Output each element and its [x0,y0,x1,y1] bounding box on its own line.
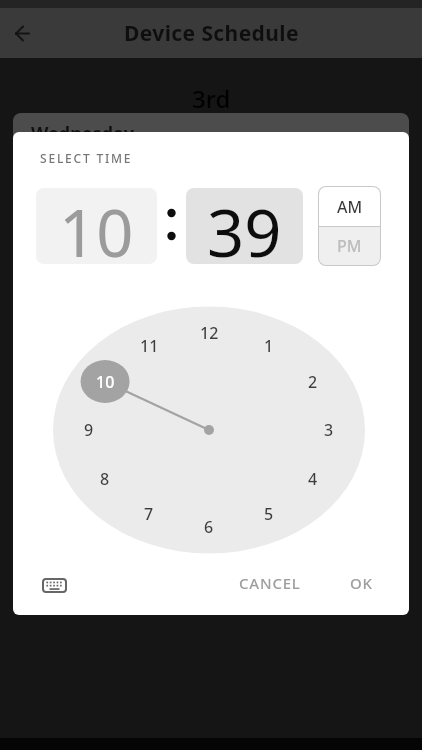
staticText: 8 [100,468,110,490]
staticText: 4 [308,468,318,490]
button[interactable]: 39 [186,188,303,264]
button[interactable]: 10 [85,371,125,393]
staticText: 11 [140,335,159,357]
button[interactable]: 11 [129,335,169,357]
staticText: 39 [207,188,282,264]
staticText: 5 [264,503,274,525]
button[interactable] [5,16,39,50]
staticText: 12 [200,322,219,344]
button[interactable]: PM [319,227,380,265]
button[interactable]: 1 [249,335,289,357]
button[interactable]: 12 [189,322,229,344]
staticText: 10 [96,371,115,393]
staticText: AM [337,196,363,218]
staticText: 3 [324,419,334,441]
button[interactable]: 9 [69,419,109,441]
button[interactable]: 4 [293,468,333,490]
button[interactable]: 3 [309,419,349,441]
button[interactable] [38,573,70,597]
staticText: CANCEL [239,573,301,593]
staticText: Device Schedule [124,19,299,48]
staticText: OK [350,573,373,593]
staticText: PM [337,235,362,257]
button[interactable]: 6 [189,516,229,538]
button[interactable]: OK [338,572,384,594]
button[interactable]: 2 [293,371,333,393]
button[interactable]: CANCEL [228,572,312,594]
staticText: Wednesday [31,121,135,146]
staticText: 6 [204,516,214,538]
button[interactable]: 8 [85,468,125,490]
staticText: 7 [144,503,154,525]
staticText: 1 [264,335,274,357]
staticText: SELECT TIME [40,150,133,166]
button[interactable]: 5 [249,503,289,525]
button[interactable]: 7 [129,503,169,525]
staticText: 2 [308,371,318,393]
staticText: 10 [59,188,134,264]
button[interactable]: 10 [36,188,157,264]
staticText: 3rd [192,82,231,115]
staticText: 9 [84,419,94,441]
button[interactable]: AM [319,187,380,226]
